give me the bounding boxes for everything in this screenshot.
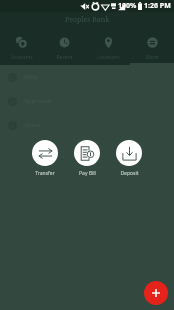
button[interactable]: Recent [43,30,86,61]
staticText: Pay Bill [79,170,96,177]
button[interactable]: Deposit [116,140,142,177]
staticText: Transfer [35,170,55,177]
staticText: Recent [56,54,73,61]
button[interactable]: Locations [86,30,130,61]
button[interactable]: More [130,30,174,61]
staticText: 1:26 PM [144,1,171,11]
staticText: Locations [97,54,120,61]
button[interactable]: Add [144,281,168,305]
button[interactable]: Accounts [0,30,43,61]
button[interactable]: Pay Bill [74,140,100,177]
staticText: 100% [118,1,137,11]
staticText: Deposit [120,170,139,177]
staticText: More [146,54,159,61]
staticText: Accounts [11,54,33,61]
button[interactable]: Transfer [32,140,58,177]
staticText: Peoples Bank [65,15,110,25]
